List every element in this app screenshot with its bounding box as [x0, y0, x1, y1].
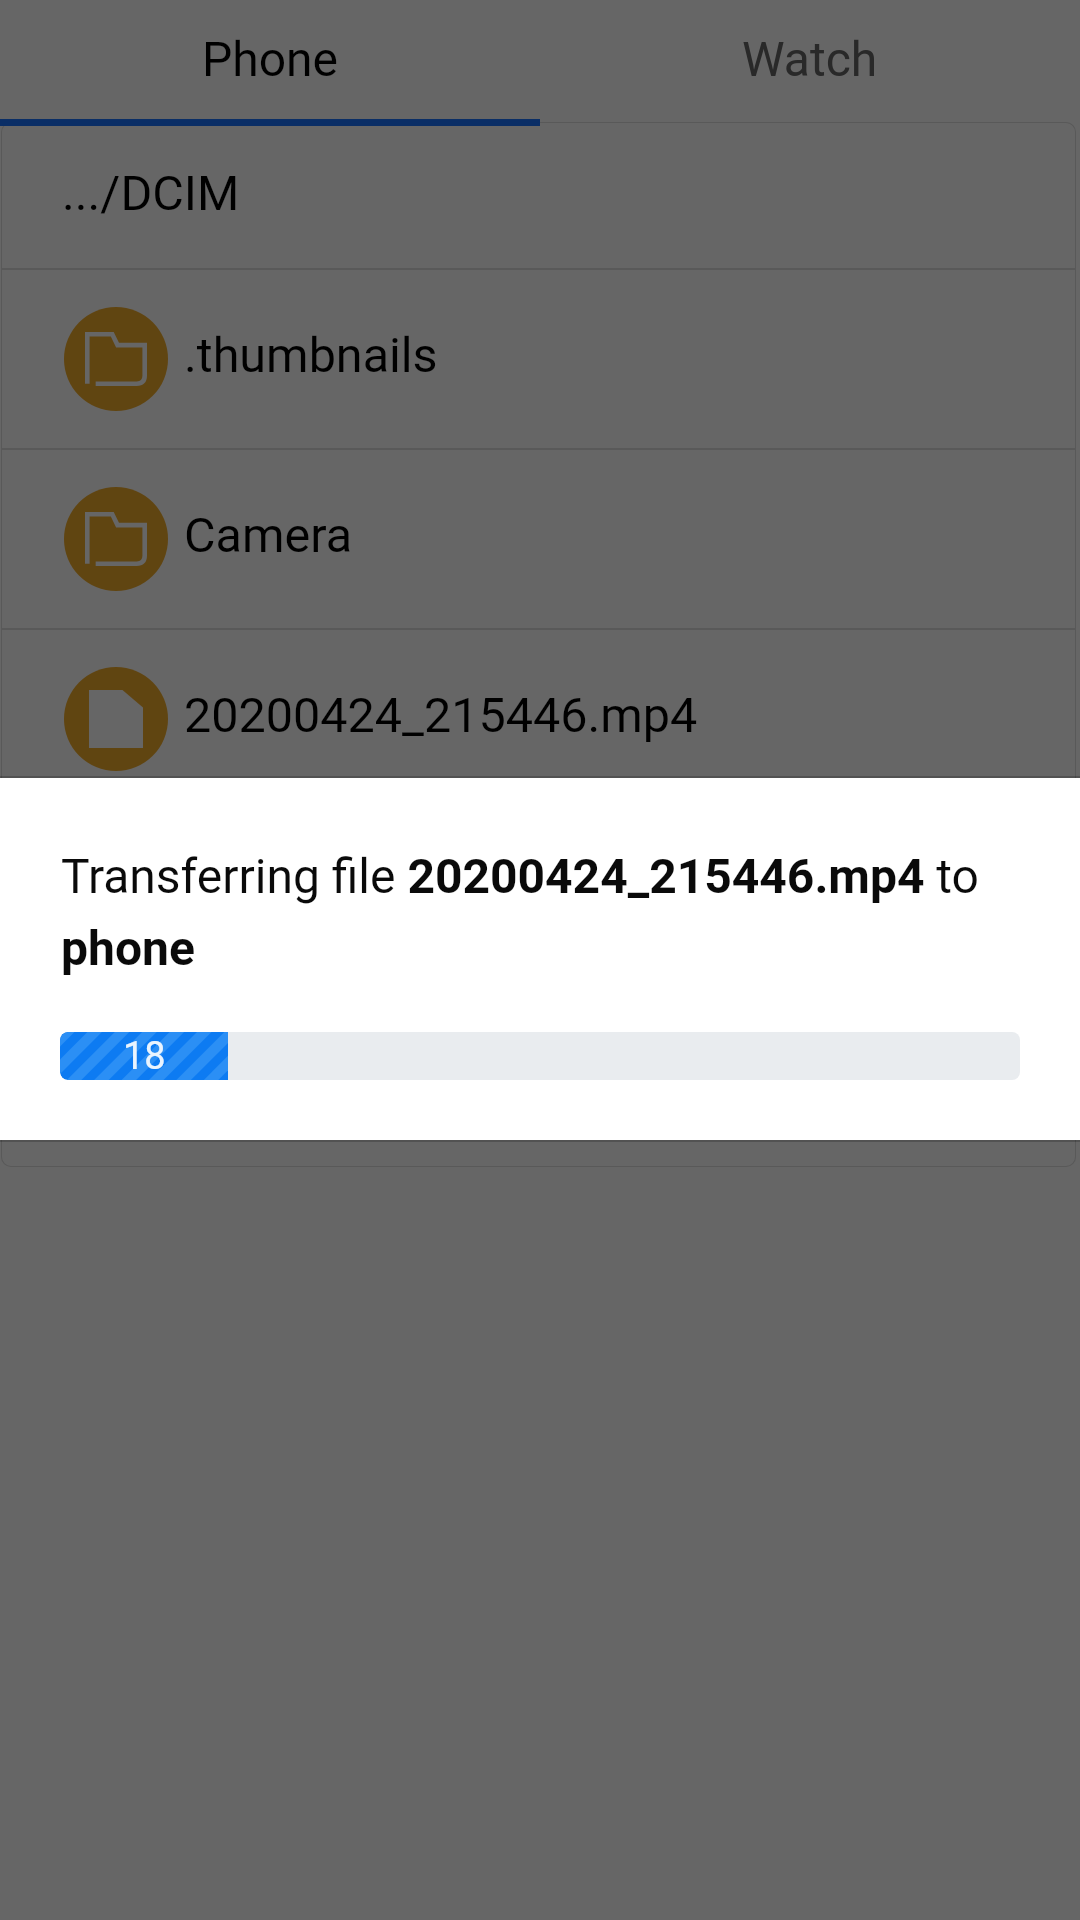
other: File	[64, 667, 168, 771]
staticText: .thumbnails	[184, 327, 438, 384]
button[interactable]: Watch	[540, 0, 1080, 118]
staticText: Phone	[202, 31, 339, 87]
staticText: Camera	[184, 507, 353, 564]
staticText: .../DCIM	[62, 165, 240, 222]
staticText: 20200424_215446.mp4	[184, 687, 698, 744]
staticText: 18	[123, 1034, 166, 1079]
button[interactable]: Folder	[1, 270, 1076, 448]
button[interactable]: Folder	[1, 450, 1076, 628]
other: Folder	[64, 307, 168, 411]
button[interactable]: File	[1, 630, 1076, 808]
button[interactable]: .../DCIM	[1, 122, 1076, 268]
other: Folder	[64, 487, 168, 591]
staticText: Watch	[742, 31, 878, 87]
button[interactable]: Phone	[0, 0, 540, 118]
staticText: Transferring file 20200424_215446.mp4 to…	[61, 848, 1022, 977]
